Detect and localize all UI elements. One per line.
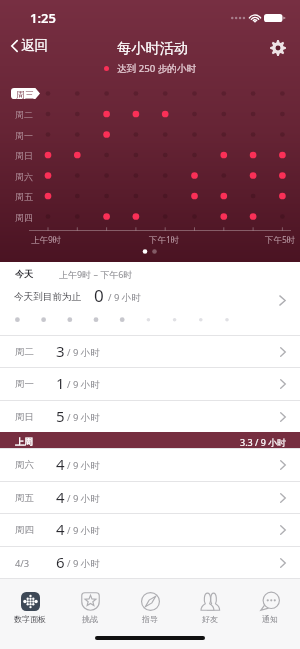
staticText: 周一 xyxy=(15,378,34,390)
staticText: 周二 xyxy=(15,109,33,120)
button[interactable]: 返回 xyxy=(6,33,54,58)
staticText: 1:25 xyxy=(30,9,56,27)
button[interactable]: 周五 xyxy=(0,481,300,514)
staticText: 达到 250 步的小时 xyxy=(117,62,197,75)
staticText: 周四 xyxy=(15,524,34,536)
staticText: / 9 小时 xyxy=(67,346,100,359)
button[interactable]: 周二 xyxy=(0,335,300,368)
staticText: / 9 小时 xyxy=(67,411,100,424)
staticText: 今天 xyxy=(15,268,33,279)
staticText: 上午9时 xyxy=(31,234,62,246)
staticText: / 9 小时 xyxy=(67,557,100,570)
staticText: 4 xyxy=(56,454,65,474)
staticText: / 9 小时 xyxy=(67,492,100,505)
button[interactable]: 周四 xyxy=(0,513,300,546)
button[interactable]: 数字面板 xyxy=(0,592,60,624)
staticText: 指导 xyxy=(142,614,158,624)
staticText: / 9 小时 xyxy=(67,459,100,472)
button[interactable]: 指导 xyxy=(120,592,180,624)
staticText: 上周 xyxy=(15,436,33,447)
staticText: 返回 xyxy=(21,37,49,54)
staticText: 周五 xyxy=(15,191,33,202)
staticText: 周五 xyxy=(15,492,34,504)
staticText: 3 xyxy=(56,341,65,361)
staticText: 挑战 xyxy=(82,614,98,624)
staticText: 每小时活动 xyxy=(117,39,188,57)
staticText: / 9 小时 xyxy=(67,378,100,391)
staticText: 周四 xyxy=(15,212,33,223)
button[interactable]: Settings xyxy=(264,34,292,62)
staticText: 6 xyxy=(56,552,65,572)
button[interactable]: 挑战 xyxy=(60,592,120,624)
staticText: 周三 xyxy=(16,89,34,100)
staticText: 上午9时 – 下午6时 xyxy=(59,268,133,280)
staticText: 周一 xyxy=(15,130,33,141)
staticText: 好友 xyxy=(202,614,218,624)
staticText: 4/3 xyxy=(15,557,30,570)
staticText: 通知 xyxy=(262,614,278,624)
staticText: 4 xyxy=(56,487,65,507)
button[interactable]: 周日 xyxy=(0,400,300,433)
staticText: 周六 xyxy=(15,459,34,471)
staticText: 周二 xyxy=(15,346,34,358)
staticText: 3.3 / 9 小时 xyxy=(240,436,287,448)
staticText: / 9 小时 xyxy=(108,291,141,304)
button[interactable]: 4/3 xyxy=(0,546,300,579)
button[interactable]: 周一 xyxy=(0,367,300,400)
button[interactable]: 通知 xyxy=(240,592,300,624)
staticText: / 9 小时 xyxy=(67,524,100,537)
button[interactable]: 周六 xyxy=(0,448,300,481)
staticText: 4 xyxy=(56,519,65,539)
button[interactable]: 好友 xyxy=(180,592,240,624)
staticText: 周日 xyxy=(15,411,34,423)
staticText: 1 xyxy=(56,373,65,393)
staticText: 周六 xyxy=(15,171,33,182)
staticText: 下午1时 xyxy=(149,234,180,246)
staticText: 0 xyxy=(94,284,104,307)
staticText: 今天到目前为止 xyxy=(14,291,82,303)
staticText: 下午5时 xyxy=(265,234,296,246)
staticText: 数字面板 xyxy=(14,614,46,624)
staticText: 周日 xyxy=(15,150,33,161)
button[interactable]: 今天到目前为止 xyxy=(0,286,300,312)
staticText: 5 xyxy=(56,406,65,426)
